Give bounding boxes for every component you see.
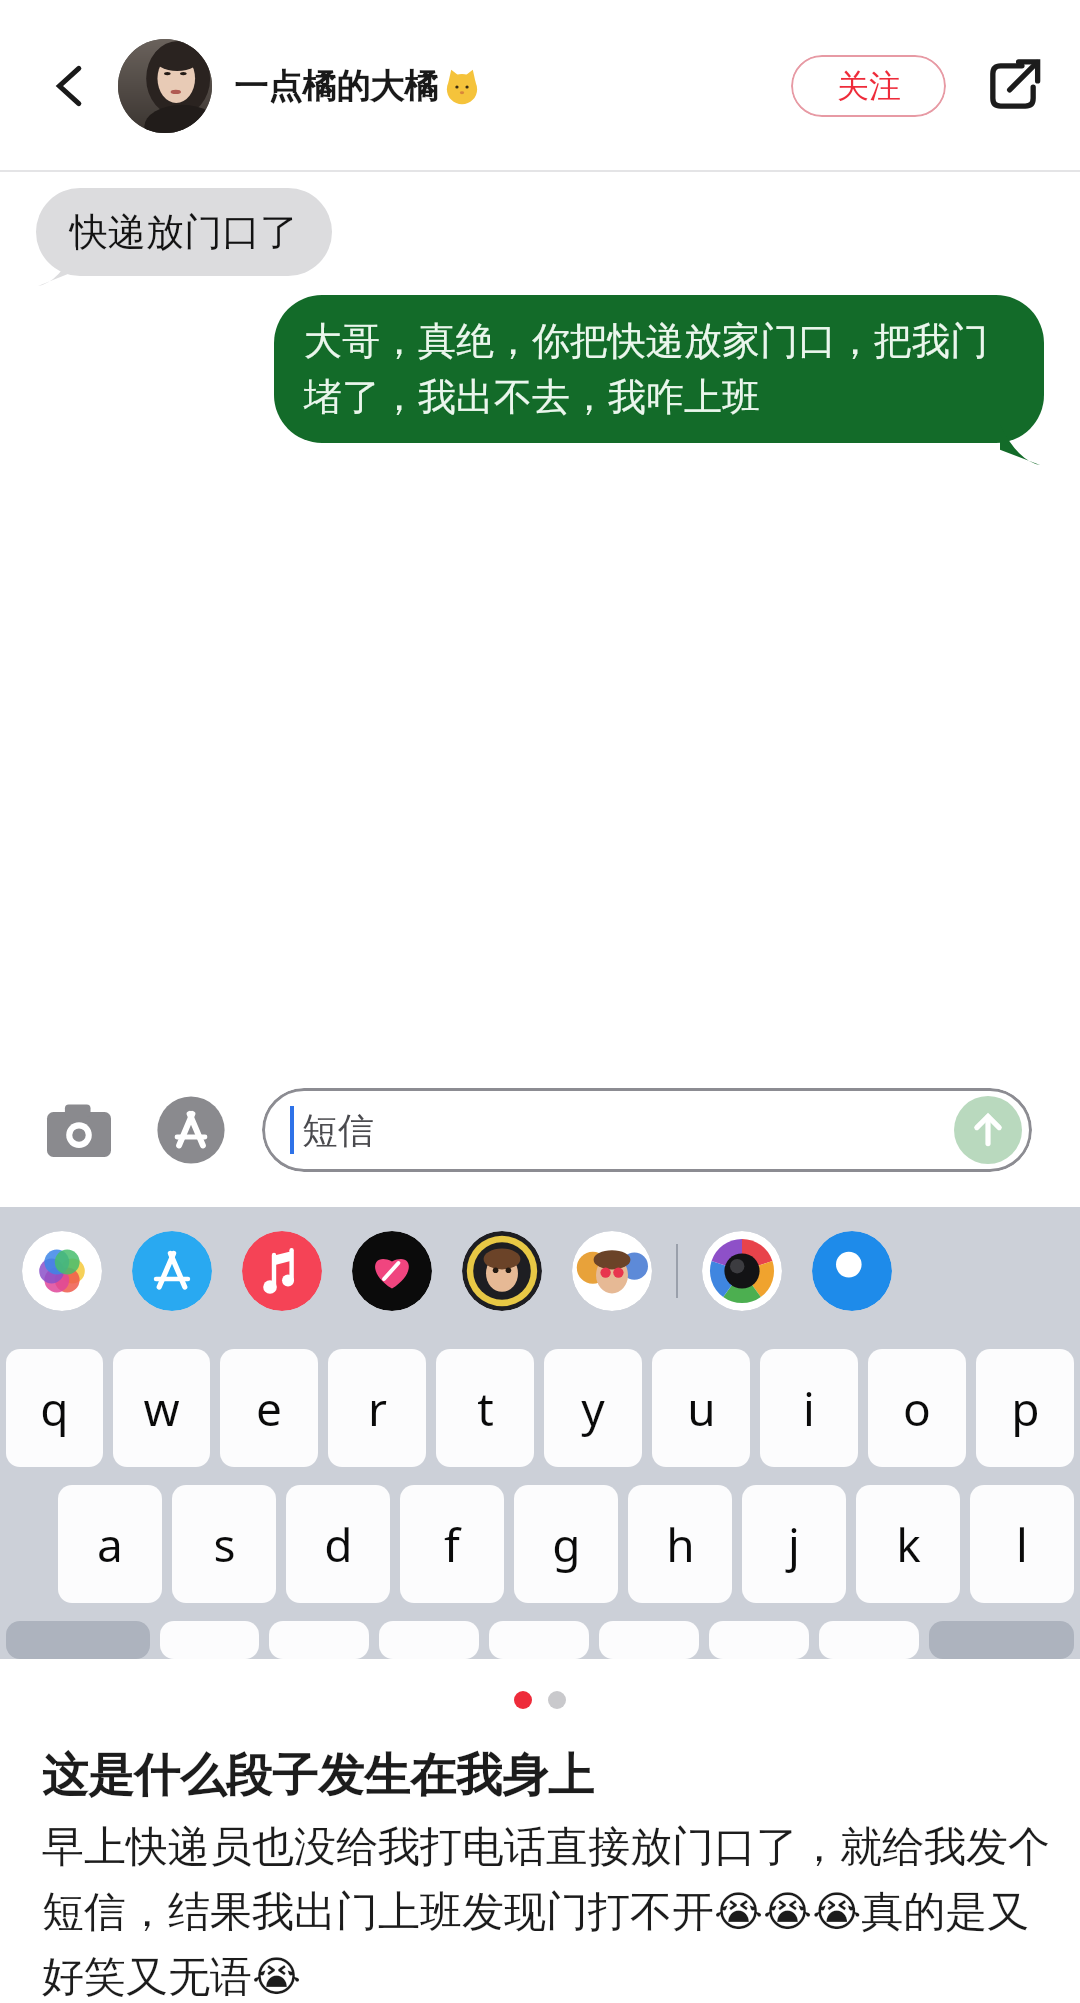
button[interactable]: w <box>113 1349 210 1467</box>
staticText: j <box>788 1513 800 1576</box>
button[interactable]: s <box>172 1485 276 1603</box>
staticText: s <box>213 1513 236 1576</box>
staticText: 早上快递员也没给我打电话直接放门口了，就给我发个短信，结果我出门上班发现门打不开… <box>42 1821 1054 2003</box>
staticText: e <box>256 1377 282 1440</box>
button[interactable] <box>379 1621 479 1659</box>
button[interactable]: App 0 <box>22 1231 102 1311</box>
button[interactable]: k <box>856 1485 960 1603</box>
button[interactable]: f <box>400 1485 504 1603</box>
button[interactable]: App 6 <box>702 1231 782 1311</box>
staticText: l <box>1016 1513 1028 1576</box>
button[interactable]: 短信 <box>262 1088 1032 1172</box>
staticText: 关注 <box>837 66 901 106</box>
button[interactable]: App 1 <box>132 1231 212 1311</box>
staticText: t <box>477 1377 494 1440</box>
button[interactable] <box>489 1621 589 1659</box>
button[interactable]: 快递放门口了 <box>36 188 332 276</box>
button[interactable]: 关注 <box>791 55 946 117</box>
staticText: 快递放门口了 <box>70 208 298 256</box>
staticText: k <box>896 1513 921 1576</box>
button[interactable]: o <box>868 1349 966 1467</box>
button[interactable] <box>819 1621 919 1659</box>
button[interactable]: App 7 <box>812 1231 892 1311</box>
button[interactable]: p <box>976 1349 1074 1467</box>
staticText: w <box>143 1377 180 1440</box>
button[interactable]: e <box>220 1349 318 1467</box>
staticText: y <box>581 1377 605 1440</box>
button[interactable]: r <box>328 1349 426 1467</box>
button[interactable]: i <box>760 1349 858 1467</box>
button[interactable]: d <box>286 1485 390 1603</box>
button[interactable]: y <box>544 1349 642 1467</box>
staticText: 短信 <box>302 1108 374 1153</box>
staticText: 一点橘的大橘 <box>234 65 438 108</box>
button[interactable]: Send <box>954 1096 1022 1164</box>
button[interactable] <box>269 1621 369 1659</box>
staticText: f <box>444 1513 460 1576</box>
staticText: q <box>40 1377 69 1440</box>
button[interactable]: App 3 <box>352 1231 432 1311</box>
staticText: u <box>687 1377 716 1440</box>
button[interactable]: t <box>436 1349 534 1467</box>
staticText: g <box>552 1513 581 1576</box>
button[interactable]: Profile avatar <box>118 39 212 133</box>
staticText: r <box>368 1377 387 1440</box>
staticText: d <box>324 1513 353 1576</box>
button[interactable]: g <box>514 1485 618 1603</box>
button[interactable] <box>709 1621 809 1659</box>
button[interactable]: App 2 <box>242 1231 322 1311</box>
button[interactable]: App 4 <box>462 1231 542 1311</box>
staticText: a <box>97 1513 123 1576</box>
button[interactable]: Share <box>976 49 1050 123</box>
button[interactable] <box>599 1621 699 1659</box>
button[interactable]: l <box>970 1485 1074 1603</box>
button[interactable]: q <box>6 1349 103 1467</box>
button[interactable]: a <box>58 1485 162 1603</box>
staticText: 大哥，真绝，你把快递放家门口，把我门堵了，我出不去，我咋上班 <box>304 317 1014 421</box>
button[interactable]: h <box>628 1485 732 1603</box>
button[interactable] <box>160 1621 259 1659</box>
button[interactable]: Delete <box>929 1621 1074 1659</box>
button[interactable]: Back <box>34 50 106 122</box>
button[interactable]: j <box>742 1485 846 1603</box>
staticText: 这是什么段子发生在我身上 <box>42 1747 594 1805</box>
staticText: i <box>803 1377 815 1440</box>
staticText: p <box>1011 1377 1040 1440</box>
button[interactable]: Camera <box>40 1091 118 1169</box>
staticText: o <box>903 1377 931 1440</box>
button[interactable]: u <box>652 1349 750 1467</box>
button[interactable]: 大哥，真绝，你把快递放家门口，把我门堵了，我出不去，我咋上班 <box>274 295 1044 443</box>
staticText: h <box>666 1513 695 1576</box>
button[interactable]: Shift <box>6 1621 150 1659</box>
button[interactable]: App 5 <box>572 1231 652 1311</box>
button[interactable]: App Store <box>152 1091 230 1169</box>
